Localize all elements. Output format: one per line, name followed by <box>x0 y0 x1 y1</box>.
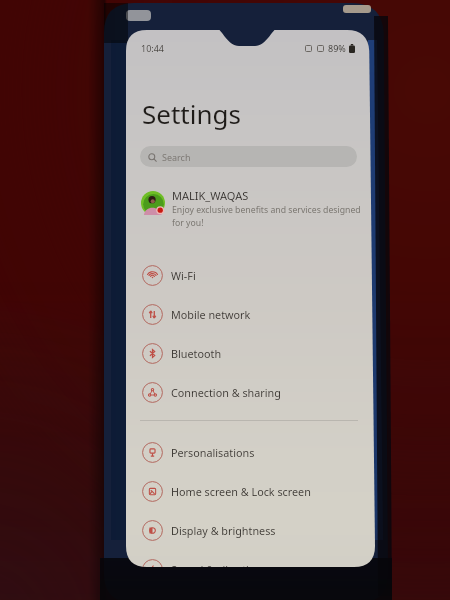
staticText: Settings <box>142 96 241 131</box>
staticText: Home screen & Lock screen <box>171 484 311 499</box>
button[interactable]: Bluetooth <box>136 334 364 373</box>
staticText: 89% <box>328 42 346 54</box>
button[interactable]: Display & brightness <box>136 511 364 550</box>
button[interactable]: Home screen & Lock screen <box>136 472 364 511</box>
button[interactable]: Personalisations <box>136 433 364 472</box>
staticText: Wi-Fi <box>171 268 196 283</box>
staticText: Search <box>162 151 191 163</box>
staticText: Connection & sharing <box>171 385 281 400</box>
button[interactable]: Sound & vibration <box>136 550 364 567</box>
button[interactable]: Search <box>140 146 357 167</box>
staticText: Bluetooth <box>171 346 222 361</box>
button[interactable]: Connection & sharing <box>136 373 364 412</box>
button[interactable]: Wi-Fi <box>136 256 364 295</box>
button[interactable]: Mobile network <box>136 295 364 334</box>
staticText: Enjoy exclusive benefits and services de… <box>172 204 368 229</box>
staticText: Sound & vibration <box>171 562 263 567</box>
staticText: MALIK_WAQAS <box>172 188 249 203</box>
staticText: Display & brightness <box>171 523 276 538</box>
button[interactable]: MALIK_WAQAS <box>136 186 374 230</box>
staticText: Personalisations <box>171 445 255 460</box>
staticText: 10:44 <box>141 42 165 54</box>
staticText: Mobile network <box>171 307 251 322</box>
